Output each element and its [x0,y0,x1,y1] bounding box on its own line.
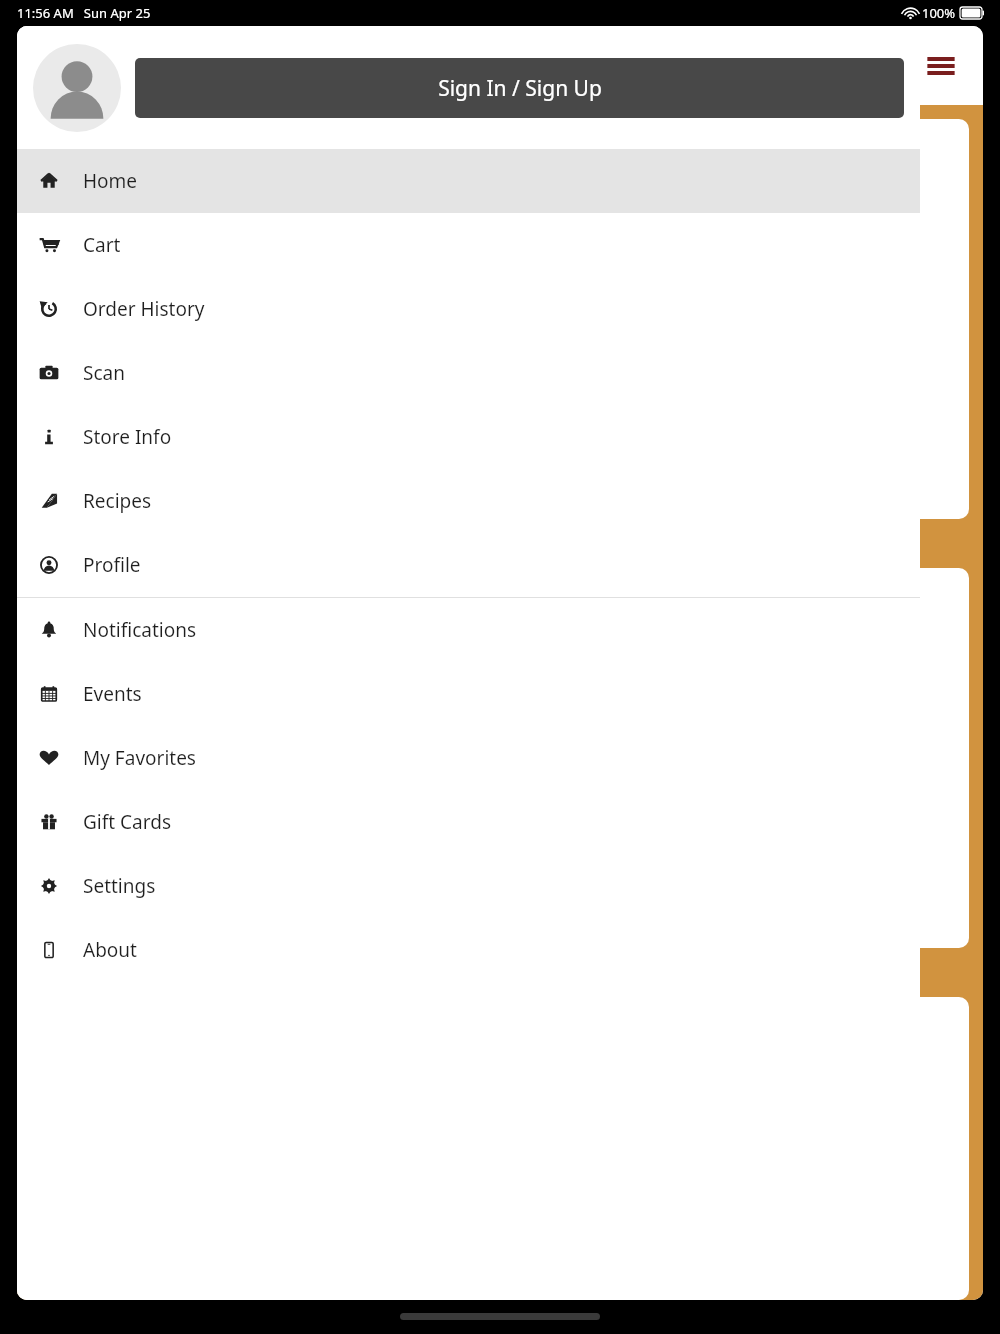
staticText: Order History [83,296,205,322]
button[interactable] [31,119,969,519]
staticText: Profile [83,552,141,578]
button[interactable]: Store Info [17,405,920,469]
staticText: 100% [922,4,956,22]
staticText: Gift Cards [83,809,171,835]
button[interactable]: Profile [17,533,920,597]
button[interactable]: About [17,918,920,982]
staticText: Notifications [83,617,197,643]
staticText: STARTING [31,529,139,560]
button[interactable]: Scan [17,341,920,405]
staticText: Scan [83,360,125,386]
button[interactable]: Order History [17,277,920,341]
button[interactable]: 3.7 [31,568,969,948]
staticText: Sign In / Sign Up [438,74,602,103]
staticText: Veuve [43,882,100,909]
staticText: Home [83,168,138,194]
staticText: 11:56 AM Sun Apr 25 [17,4,151,22]
button[interactable]: Events [17,662,920,726]
staticText: 3 Options [43,862,112,882]
staticText: About [83,937,137,963]
staticText: Recipes [83,488,152,514]
button[interactable]: My Favorites [17,726,920,790]
button[interactable]: Home [17,149,920,213]
button[interactable]: Cart [17,213,920,277]
button[interactable]: Open menu [919,44,963,88]
button[interactable]: Sign In / Sign Up [135,58,904,118]
staticText: My Favorites [83,745,196,771]
staticText: Store Info [83,424,172,450]
button[interactable]: Notifications [17,598,920,662]
staticText: Cart [83,232,121,258]
staticText: Events [83,681,142,707]
button[interactable]: Gift Cards [17,790,920,854]
staticText: 3.7 [53,620,75,640]
staticText: Settings [83,873,156,899]
button[interactable]: Settings [17,854,920,918]
button[interactable]: Recipes [17,469,920,533]
